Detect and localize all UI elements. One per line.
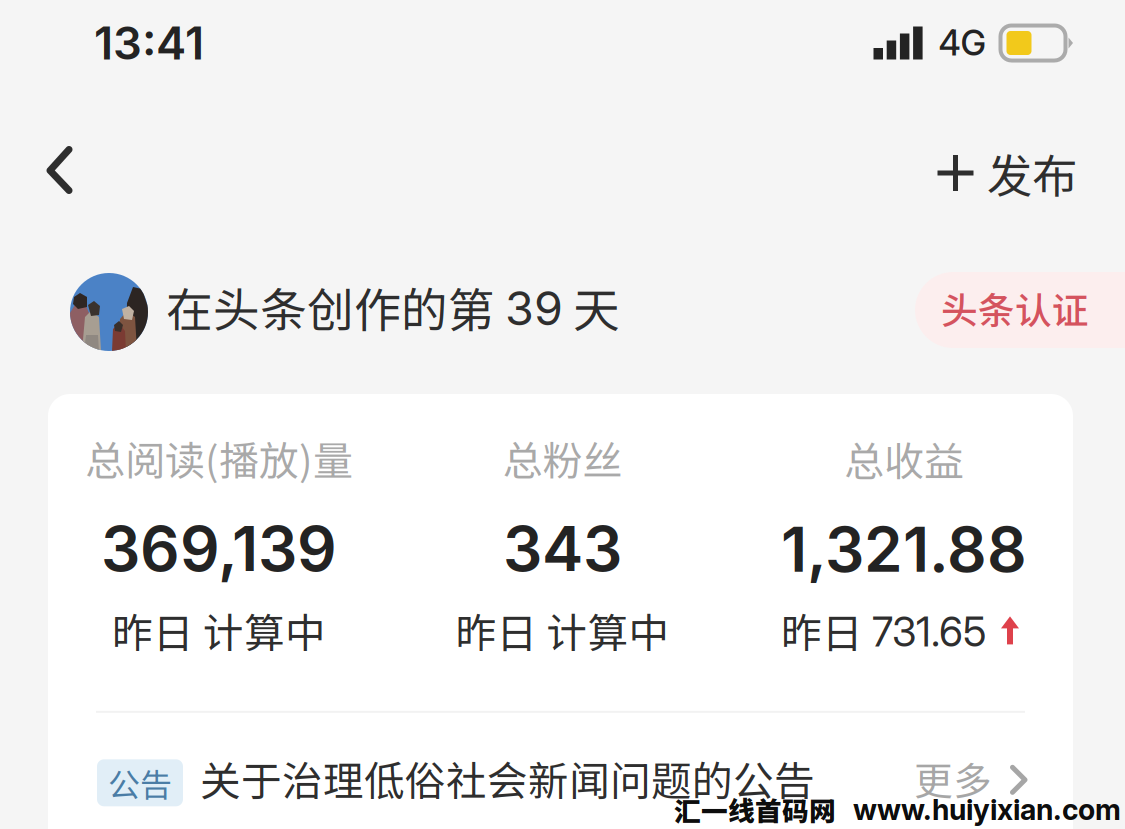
staticText: 昨日 731.65 [781,602,987,659]
button[interactable]: 在头条创作的第 39 天 [0,266,644,354]
button[interactable]: 总阅读(播放)量 [85,429,353,660]
staticText: 更多 [914,750,992,806]
staticText: 昨日 计算中 [455,601,669,660]
staticText: 在头条创作的第 39 天 [166,274,620,340]
staticText: www.huiyixian.com [853,792,1121,827]
staticText: 369,139 [101,511,337,586]
staticText: 昨日 计算中 [112,601,326,660]
button[interactable]: 公告 [48,713,1073,829]
staticText: 关于治理低俗社会新闻问题的公告 [200,749,815,808]
staticText: 13:41 [94,16,204,70]
staticText: 公告 [108,760,172,806]
staticText: 头条认证 [941,281,1089,335]
staticText: 发布 [987,140,1077,206]
button[interactable]: 头条认证 [915,272,1125,348]
button[interactable]: 总粉丝 [455,429,669,660]
staticText: 汇一线首码网 [674,790,836,829]
staticText: 1,321.88 [781,512,1027,587]
button[interactable]: 总收益 [781,430,1027,659]
button[interactable]: 发布 [907,125,1125,221]
staticText: 4G [938,22,986,64]
button[interactable]: Back [0,125,119,221]
staticText: 总收益 [844,430,964,488]
staticText: 总粉丝 [502,429,622,487]
staticText: 343 [503,511,622,586]
staticText: 总阅读(播放)量 [85,429,353,487]
